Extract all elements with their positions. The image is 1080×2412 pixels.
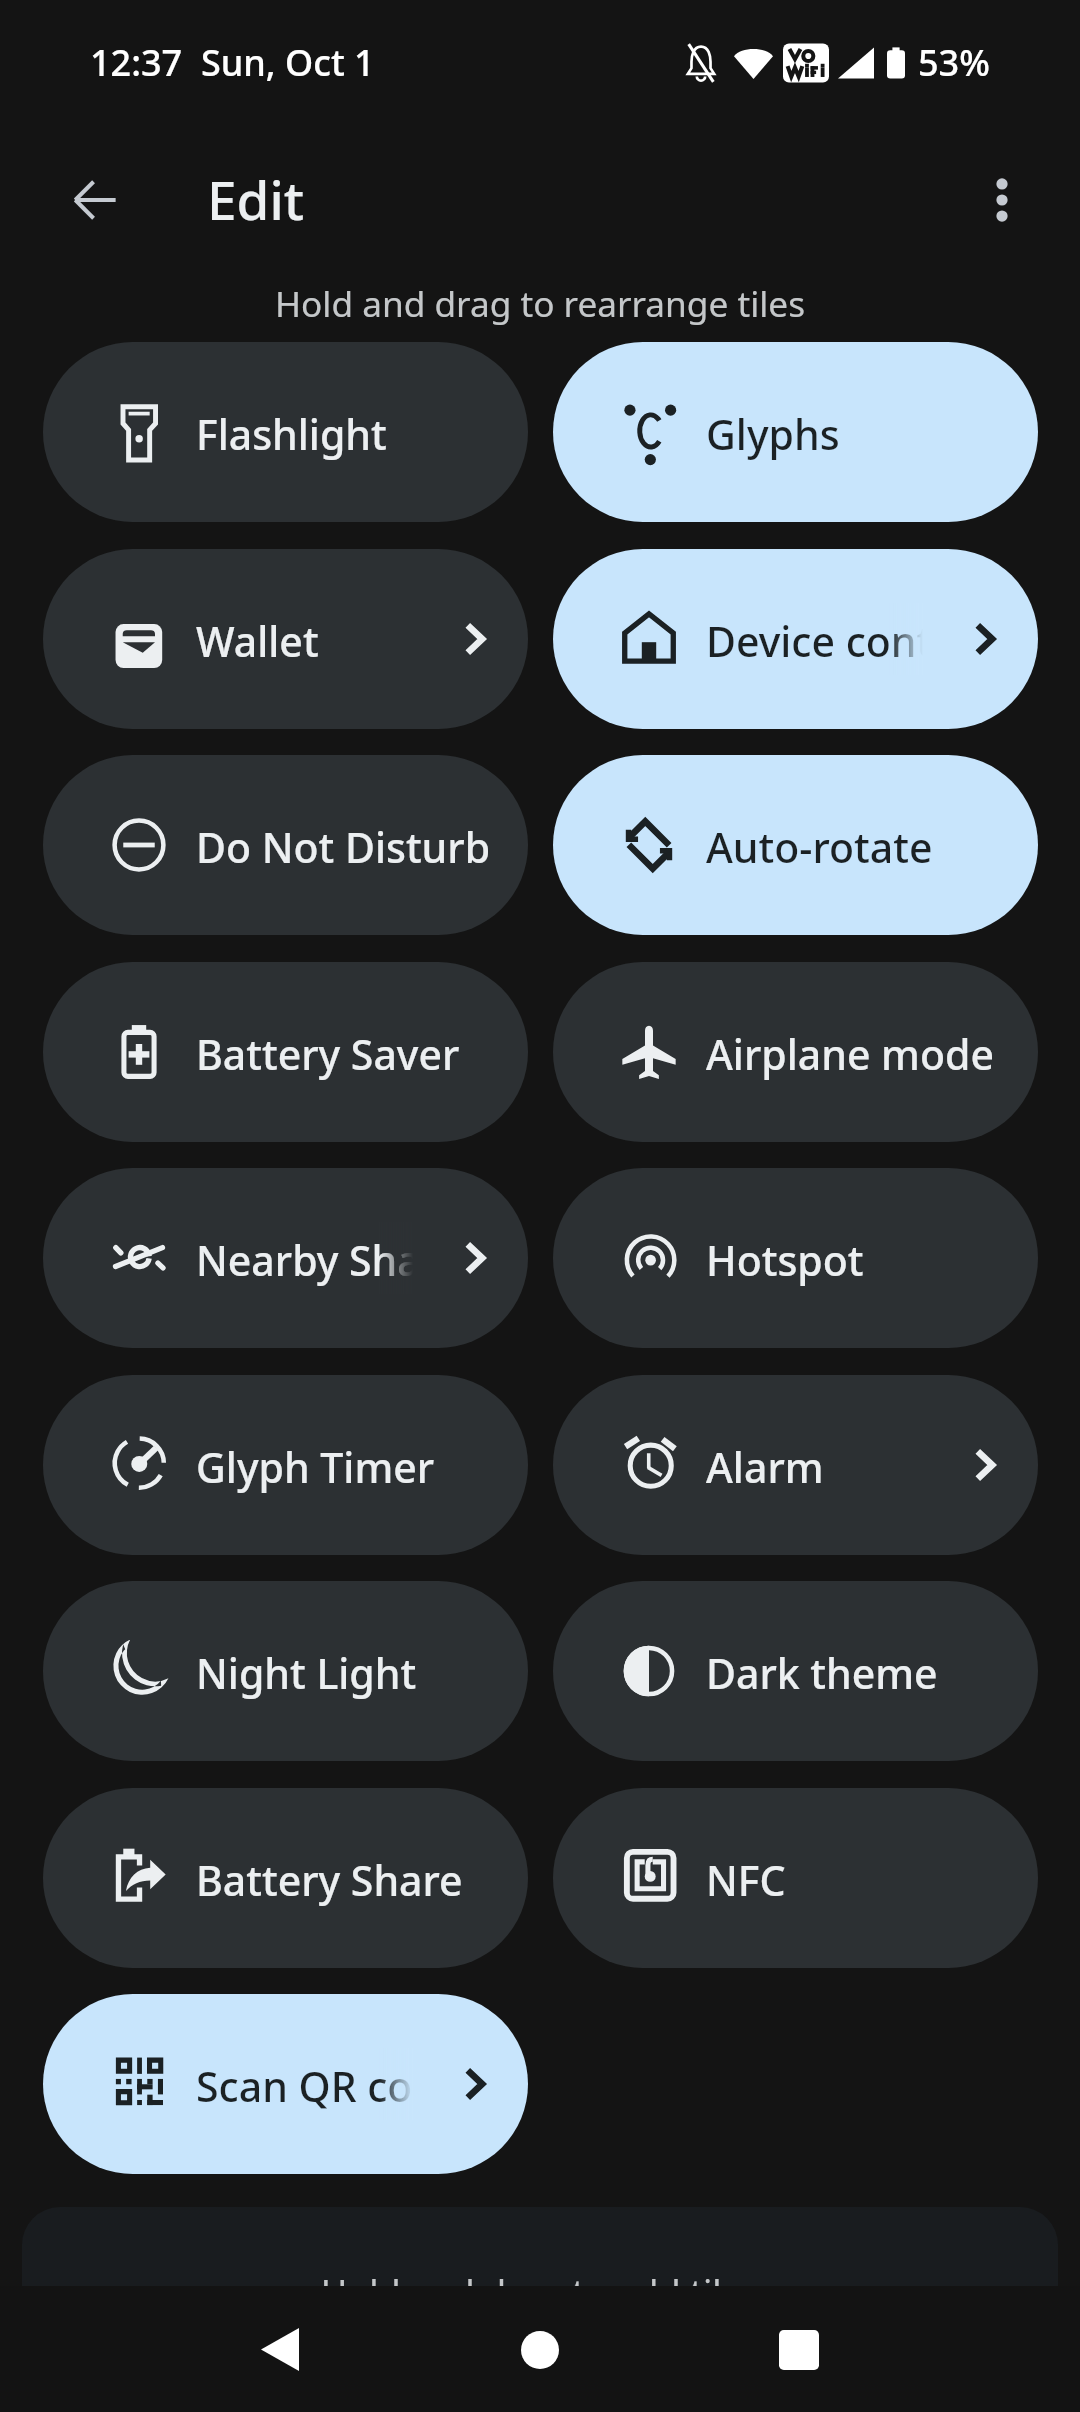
staticText: Glyphs [706,406,840,462]
button[interactable]: Nearby Share [43,1168,528,1348]
staticText: Nearby Share [196,1232,413,1288]
staticText: Wallet [196,613,319,669]
staticText: Alarm [706,1439,824,1495]
button[interactable]: Glyph Timer [43,1375,528,1555]
staticText: Flashlight [196,406,387,462]
button[interactable]: Scan QR code [43,1994,528,2174]
staticText: 12:37 Sun, Oct 1 [90,38,375,87]
button[interactable]: More options [954,152,1050,248]
staticText: Scan QR code [196,2058,413,2114]
button[interactable]: Hotspot [553,1168,1038,1348]
staticText: Hotspot [706,1232,864,1288]
staticText: Edit [207,163,304,235]
staticText: Device controls [706,613,923,669]
staticText: Hold and drag to rearrange tiles [0,279,1080,327]
staticText: Battery Saver [196,1026,460,1082]
staticText: Airplane mode [706,1026,994,1082]
staticText: Hold and drag to add tiles [22,2268,1058,2286]
staticText: Do Not Disturb [196,819,491,875]
button[interactable]: Auto-rotate [553,755,1038,935]
button[interactable]: Flashlight [43,342,528,522]
staticText: Battery Share [196,1852,463,1908]
staticText: NFC [706,1852,786,1908]
button[interactable]: Battery Saver [43,962,528,1142]
button[interactable]: Night Light [43,1581,528,1761]
button[interactable]: Dark theme [553,1581,1038,1761]
button[interactable]: Hold and drag to add tiles [22,2207,1058,2286]
staticText: Auto-rotate [706,819,933,875]
staticText: Glyph Timer [196,1439,435,1495]
button[interactable]: Do Not Disturb [43,755,528,935]
staticText: Night Light [196,1645,417,1701]
button[interactable]: Home [491,2301,588,2398]
staticText: Dark theme [706,1645,938,1701]
button[interactable]: Device controls [553,549,1038,729]
button[interactable]: Battery Share [43,1788,528,1968]
button[interactable]: NFC [553,1788,1038,1968]
staticText: 53% [918,38,990,87]
button[interactable]: Airplane mode [553,962,1038,1142]
button[interactable]: Alarm [553,1375,1038,1555]
button[interactable]: Wallet [43,549,528,729]
button[interactable]: Recent apps [750,2301,847,2398]
button[interactable]: Glyphs [553,342,1038,522]
button[interactable]: Back [231,2301,328,2398]
button[interactable]: Back [47,152,143,248]
